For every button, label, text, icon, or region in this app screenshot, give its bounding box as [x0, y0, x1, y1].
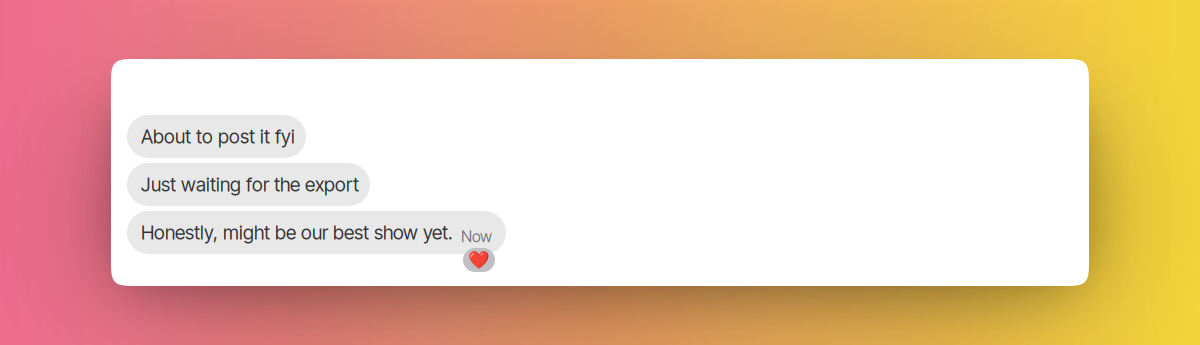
staticText: Honestly, might be our best show yet. — [141, 221, 453, 244]
staticText: Just waiting for the export — [141, 173, 359, 196]
button[interactable]: Just waiting for the export — [127, 163, 370, 206]
staticText: Now — [461, 227, 492, 246]
button[interactable]: About to post it fyi — [127, 115, 306, 158]
staticText: ❤️ — [468, 250, 490, 270]
button[interactable]: Honestly, might be our best show yet. — [127, 211, 506, 254]
staticText: About to post it fyi — [141, 125, 295, 148]
